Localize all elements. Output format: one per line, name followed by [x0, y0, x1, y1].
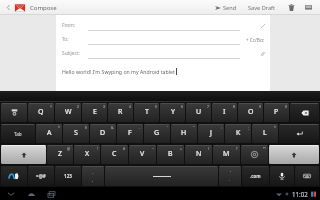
staticText: * [274, 125, 276, 130]
button[interactable]: 5 [134, 103, 159, 122]
staticText: # [123, 146, 126, 151]
staticText: E [93, 107, 97, 117]
staticText: Compose [30, 4, 57, 12]
staticText: H [181, 128, 187, 138]
staticText: X [85, 149, 90, 159]
staticText: Tab [14, 131, 22, 137]
staticText: . [229, 177, 231, 183]
button[interactable]: ↔ [241, 145, 268, 164]
button[interactable]: * [252, 124, 278, 143]
staticText: T [145, 107, 149, 117]
button[interactable]: Shift [1, 145, 46, 164]
staticText: P [274, 107, 279, 117]
button[interactable]: & [90, 124, 116, 143]
staticText: 8 [233, 104, 235, 109]
staticText: 7 [207, 104, 209, 109]
button[interactable]: ' [144, 124, 170, 143]
staticText: S [74, 128, 78, 138]
button[interactable]: Shift [269, 145, 319, 164]
staticText: 11:02 [292, 190, 308, 198]
staticText: B [168, 149, 173, 159]
button[interactable]: # [101, 145, 128, 164]
button[interactable]: 4 [108, 103, 133, 122]
staticText: To: [62, 36, 69, 43]
staticText: @ [67, 146, 71, 151]
staticText: 6 [181, 104, 183, 109]
button[interactable]: ! [74, 145, 100, 164]
button[interactable]: 0 [264, 103, 289, 122]
button[interactable]: ? [213, 145, 240, 164]
button[interactable]: $ [63, 124, 89, 143]
button[interactable]: Send [213, 4, 239, 12]
staticText: Hello world! I'm Swyping on my Android t… [62, 68, 175, 75]
staticText: From: [62, 22, 76, 29]
button[interactable]: Status [276, 190, 316, 198]
button[interactable]: Save Draft [246, 4, 278, 12]
button[interactable]: To: [62, 34, 265, 45]
button[interactable]: @ [47, 145, 73, 164]
button[interactable]: =@# [28, 166, 54, 186]
button[interactable]: 7 [186, 103, 211, 122]
staticText: O [248, 107, 254, 117]
staticText: 2 [77, 104, 79, 109]
button[interactable]: 2 [55, 103, 81, 122]
staticText: ? [236, 146, 238, 151]
button[interactable]: * [36, 124, 62, 143]
staticText: F [128, 128, 132, 138]
staticText: Subject: [62, 50, 80, 57]
staticText: Q [38, 107, 44, 117]
staticText: K [236, 128, 241, 138]
button[interactable]: + [157, 145, 184, 164]
staticText: 4 [129, 104, 131, 109]
button[interactable]: Space [105, 166, 218, 186]
staticText: ; [248, 125, 249, 130]
button[interactable]: 8 [212, 103, 237, 122]
staticText: =@# [36, 173, 46, 179]
button[interactable]: / [185, 145, 212, 164]
staticText: : [221, 125, 222, 130]
button[interactable]: 9 [238, 103, 263, 122]
button[interactable]: Up [4, 3, 13, 12]
staticText: " [193, 125, 195, 130]
button[interactable]: Subject: [62, 48, 265, 59]
button[interactable]: ~ [129, 145, 156, 164]
button[interactable]: From: [62, 20, 265, 31]
button[interactable]: " [171, 124, 197, 143]
button[interactable]: 1 [28, 103, 54, 122]
button[interactable]: Suggestions [0, 91, 320, 102]
button[interactable]: Enter [279, 124, 319, 143]
button[interactable]: Discard [286, 2, 297, 13]
button[interactable]: : [198, 124, 224, 143]
button[interactable]: Gmail [15, 3, 25, 13]
button[interactable]: - [82, 166, 104, 186]
staticText: - [92, 170, 94, 176]
button[interactable]: Swype settings [1, 166, 27, 186]
staticText: Y [171, 107, 175, 117]
button[interactable]: Recent apps [46, 189, 56, 199]
button[interactable]: - [117, 124, 143, 143]
staticText: Z [58, 149, 63, 159]
staticText: ! [97, 146, 98, 151]
button[interactable]: More options [303, 2, 314, 13]
button[interactable]: Hide keyboard [6, 189, 16, 199]
staticText: L [263, 128, 267, 138]
button[interactable]: Tab [1, 124, 35, 143]
button[interactable]: ' [219, 166, 241, 186]
button[interactable]: Backspace [290, 103, 319, 122]
staticText: + [180, 146, 182, 151]
button[interactable]: .com [242, 166, 269, 186]
staticText: / [208, 146, 210, 151]
button[interactable]: 6 [160, 103, 185, 122]
button[interactable]: Voice input [270, 166, 294, 186]
button[interactable]: Change keyboard [295, 166, 319, 186]
staticText: J [210, 128, 212, 138]
button[interactable]: ; [225, 124, 251, 143]
staticText: * [58, 125, 60, 130]
staticText: 3 [103, 104, 105, 109]
button[interactable]: Emoji keyboard [1, 103, 27, 122]
button[interactable]: Home [26, 189, 36, 199]
button[interactable]: 123 [55, 166, 81, 186]
staticText: ' [230, 170, 231, 176]
button[interactable]: 3 [82, 103, 107, 122]
staticText: & [111, 125, 114, 130]
